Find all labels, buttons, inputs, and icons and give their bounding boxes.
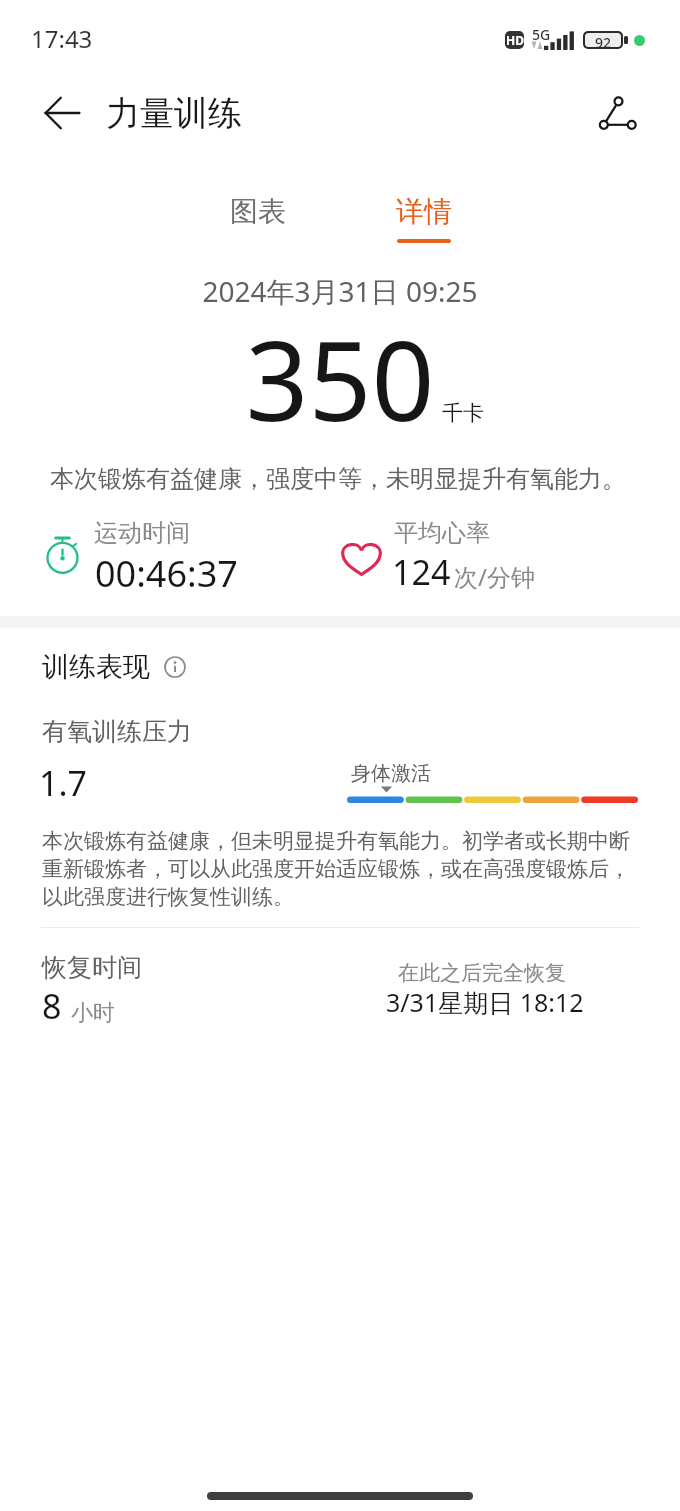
button[interactable]: 图表 <box>201 186 315 252</box>
staticText: 图表 <box>230 194 286 229</box>
staticText: 2024年3月31日 09:25 <box>0 272 680 310</box>
staticText: 平均心率 <box>394 518 490 548</box>
staticText: 训练表现 <box>42 650 150 684</box>
staticText: 详情 <box>396 194 452 229</box>
staticText: 3/31星期日 18:12 <box>386 985 584 1019</box>
staticText: 92 <box>595 33 612 47</box>
button[interactable]: Back <box>36 87 88 139</box>
staticText: 身体激活 <box>351 761 431 786</box>
staticText: 350 <box>0 303 680 453</box>
button[interactable]: 详情 <box>367 186 481 252</box>
staticText: 有氧训练压力 <box>42 716 192 747</box>
staticText: 在此之后完全恢复 <box>398 960 566 986</box>
staticText: 8 <box>42 983 62 1029</box>
button[interactable]: Info <box>160 652 190 682</box>
staticText: 本次锻炼有益健康，但未明显提升有氧能力。初学者或长期中断重新锻炼者，可以从此强度… <box>42 828 632 910</box>
staticText: 千卡 <box>442 400 484 426</box>
button[interactable]: Share <box>591 87 643 139</box>
staticText: 次/分钟 <box>454 560 535 593</box>
staticText: 运动时间 <box>94 518 190 548</box>
staticText: 124 <box>392 549 451 595</box>
staticText: 00:46:37 <box>95 549 238 598</box>
staticText: 本次锻炼有益健康，强度中等，未明显提升有氧能力。 <box>50 464 626 494</box>
staticText: 1.7 <box>39 760 88 806</box>
staticText: 5G <box>532 25 551 44</box>
staticText: 力量训练 <box>106 92 242 135</box>
staticText: 17:43 <box>31 22 93 55</box>
staticText: 恢复时间 <box>42 952 142 983</box>
staticText: HD <box>506 32 524 48</box>
staticText: 小时 <box>71 999 115 1027</box>
